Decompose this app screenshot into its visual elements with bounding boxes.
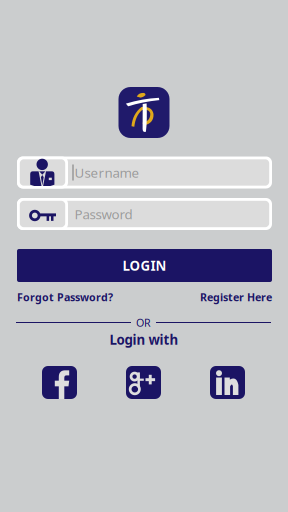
staticText: LOGIN (122, 257, 166, 274)
staticText: Forgot Password? (17, 290, 113, 304)
staticText: OR (136, 315, 151, 330)
staticText: Password (74, 205, 132, 223)
button[interactable]: Sign in with Google (126, 366, 161, 399)
staticText: Register Here (200, 290, 272, 304)
button[interactable]: Sign in with LinkedIn (210, 366, 245, 399)
button[interactable]: Sign in with Facebook (42, 366, 77, 399)
button[interactable]: LOGIN (17, 249, 272, 282)
staticText: Login with (109, 331, 178, 348)
button[interactable]: Register Here (200, 290, 272, 304)
staticText: Username (74, 164, 139, 181)
button[interactable]: Forgot Password? (17, 290, 113, 304)
